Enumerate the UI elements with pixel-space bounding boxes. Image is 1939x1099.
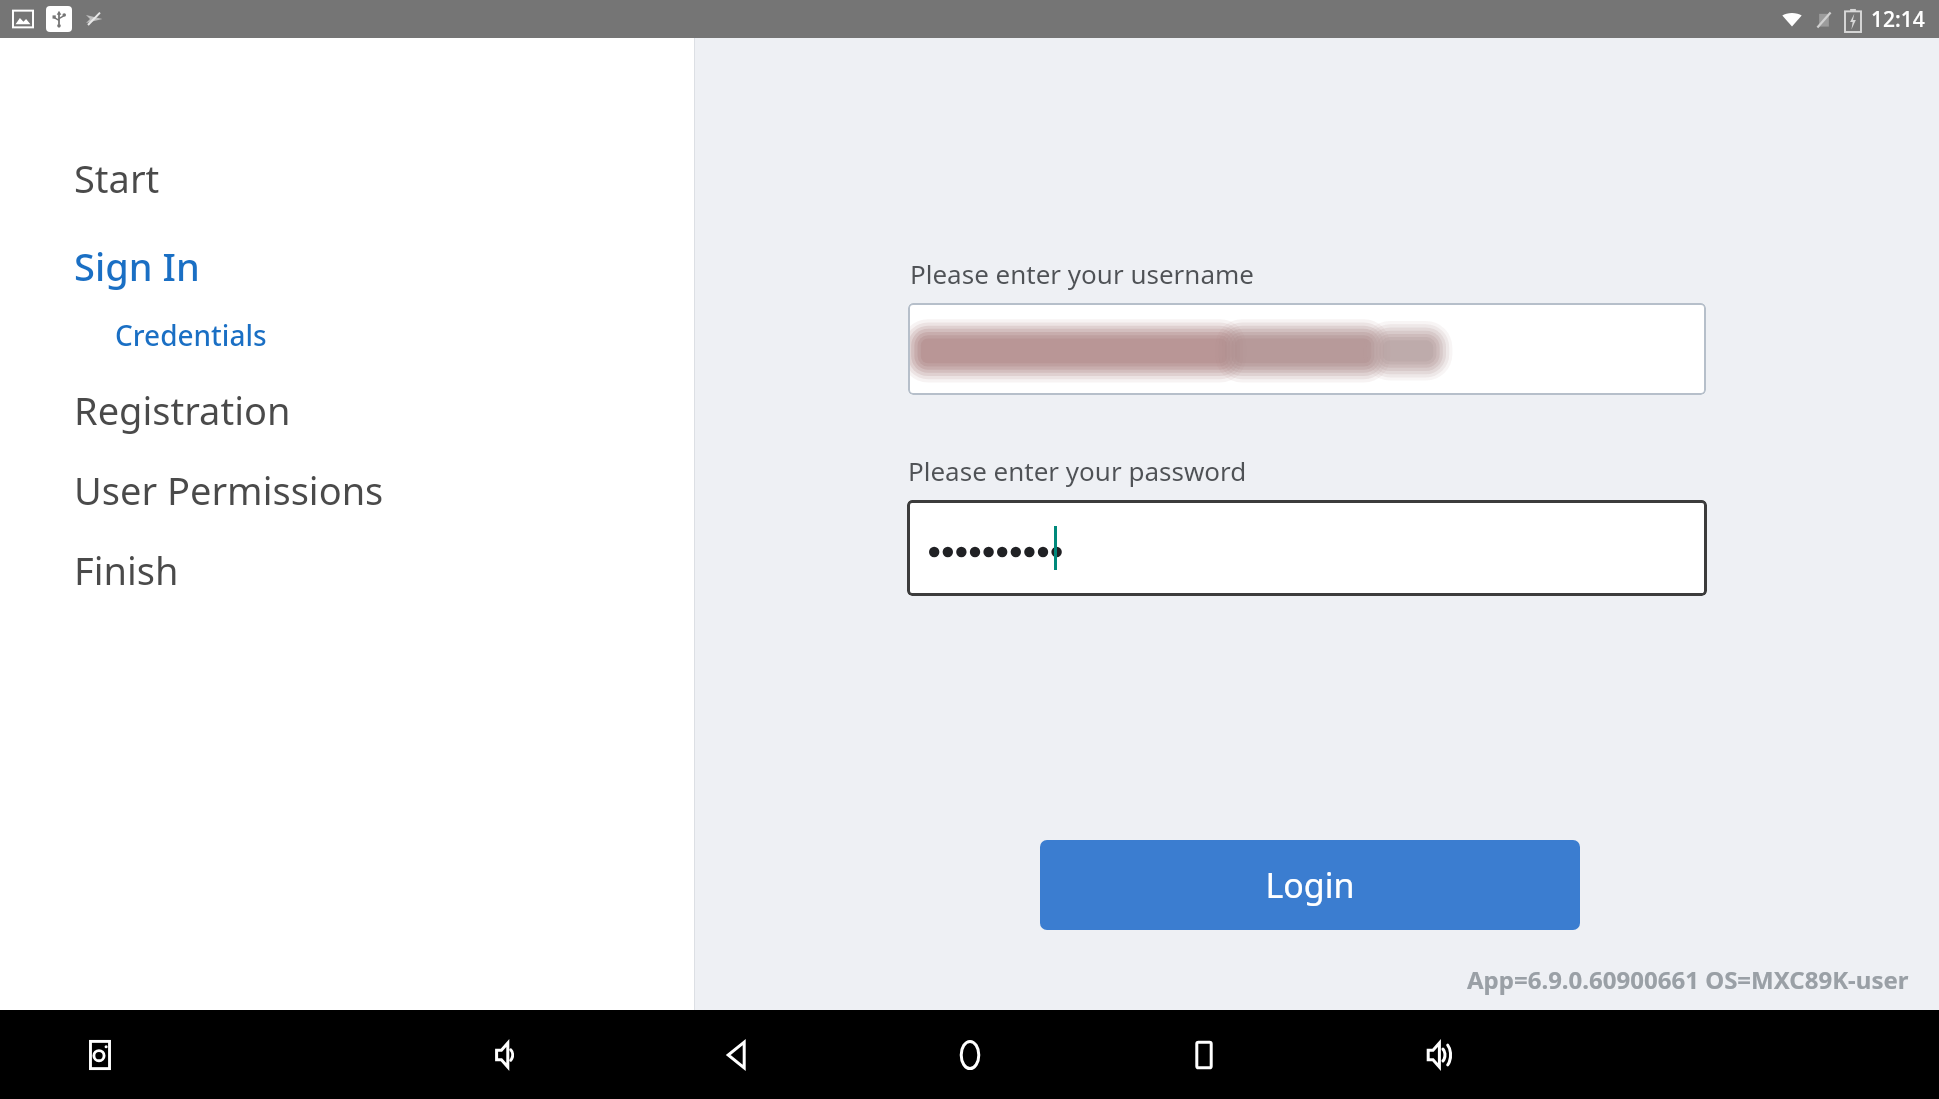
button[interactable]: Registration <box>0 380 694 440</box>
button[interactable]: Login <box>1040 840 1580 930</box>
button[interactable]: User Permissions <box>0 460 694 520</box>
button[interactable]: Screenshot <box>72 1027 128 1083</box>
staticText: Please enter your password <box>908 453 1247 488</box>
button[interactable]: Volume up <box>1400 1018 1474 1092</box>
staticText: Registration <box>74 384 291 436</box>
button[interactable]: Credentials <box>0 312 694 358</box>
staticText: Login <box>1265 862 1355 908</box>
button[interactable] <box>908 303 1706 395</box>
button[interactable]: Start <box>0 148 694 208</box>
button[interactable]: Volume down <box>466 1018 540 1092</box>
button[interactable]: Recent apps <box>1167 1018 1241 1092</box>
staticText: Please enter your username <box>910 256 1254 291</box>
staticText: Credentials <box>115 316 267 354</box>
button[interactable]: Sign In <box>0 236 694 296</box>
button[interactable]: Finish <box>0 540 694 600</box>
staticText: Start <box>74 152 160 204</box>
staticText: User Permissions <box>74 464 384 516</box>
staticText: Sign In <box>74 240 200 292</box>
button[interactable]: Back <box>700 1018 774 1092</box>
button[interactable] <box>907 500 1707 596</box>
button[interactable]: Home <box>933 1018 1007 1092</box>
staticText: Finish <box>74 544 179 596</box>
staticText: App=6.9.0.60900661 OS=MXC89K-user <box>1467 963 1909 996</box>
staticText: 12:14 <box>1871 5 1925 34</box>
